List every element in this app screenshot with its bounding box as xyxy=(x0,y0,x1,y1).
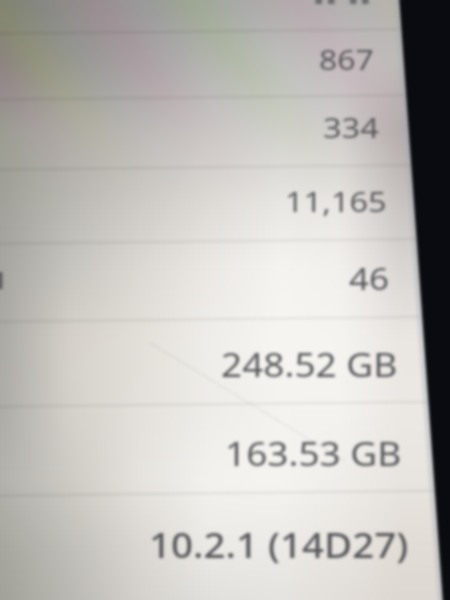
button[interactable] xyxy=(0,0,450,600)
